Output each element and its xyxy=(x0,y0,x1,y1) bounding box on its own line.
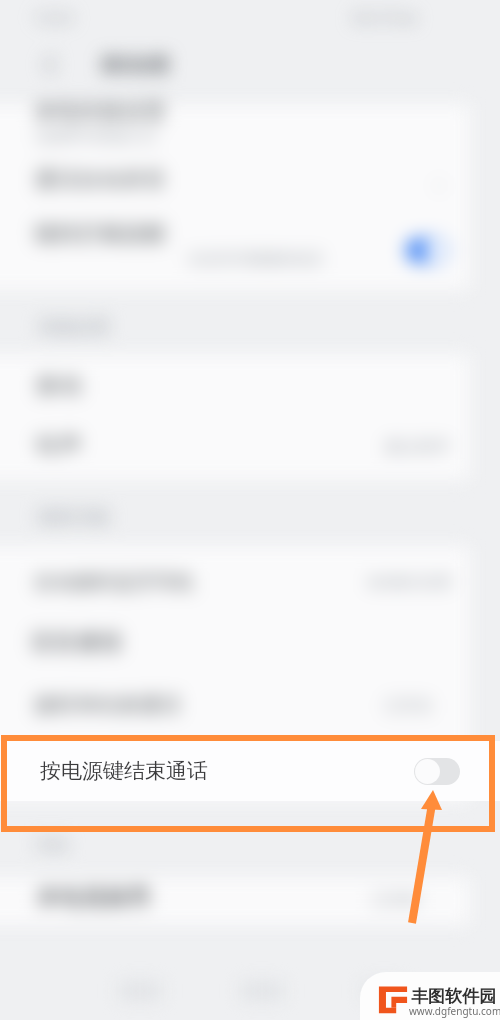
staticText: 已关闭 xyxy=(372,890,420,910)
staticText: www.dgfengtu.com xyxy=(409,1004,500,1018)
staticText: 自动接听蓝牙耳机 xyxy=(34,570,194,595)
staticText: 骚扰拦截提醒 xyxy=(34,220,166,248)
staticText: 语音播报 xyxy=(30,628,122,657)
staticText: 来电转接设置 xyxy=(34,98,166,126)
staticText: 铃声 xyxy=(36,431,82,460)
staticText: 设置呼叫转移方式 xyxy=(36,128,156,147)
staticText: 丰图软件园 xyxy=(411,986,496,1007)
staticText: 接听和结束通话 xyxy=(34,692,181,718)
staticText: 来电视频秀 xyxy=(36,883,151,912)
staticText: 通话自动录音 xyxy=(34,166,166,194)
staticText: 通话设置 xyxy=(101,55,169,76)
button[interactable]: 按电源键结束通话 xyxy=(0,741,500,801)
button[interactable]: End call with power button toggle xyxy=(414,758,460,785)
staticText: 按电源键结束通话 xyxy=(40,758,208,784)
staticText: 振动 xyxy=(36,371,82,400)
